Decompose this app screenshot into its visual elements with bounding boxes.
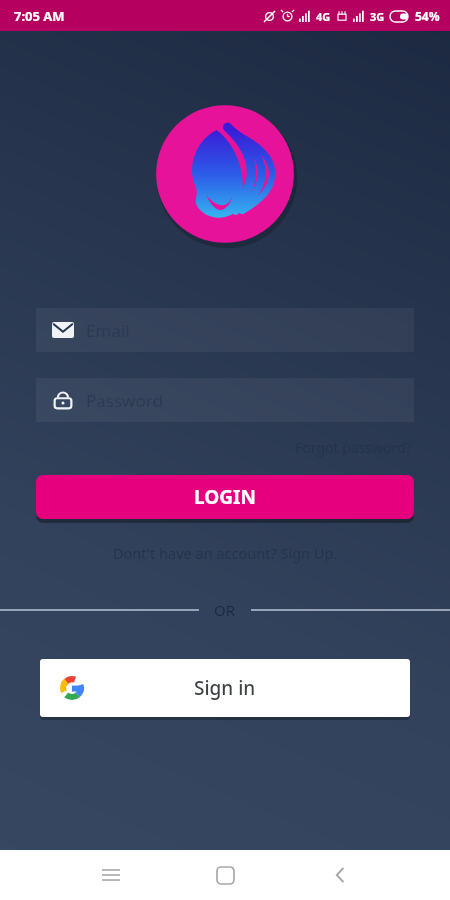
staticText: 54% xyxy=(415,8,440,24)
button[interactable]: Password xyxy=(36,378,414,422)
button[interactable]: LOGIN xyxy=(36,475,414,519)
staticText: Email xyxy=(86,319,130,342)
button[interactable]: Back xyxy=(312,850,368,900)
staticText: Sign in xyxy=(194,675,256,701)
button[interactable]: Sign in xyxy=(40,659,410,717)
staticText: Password xyxy=(86,389,163,412)
staticText: 7:05 AM xyxy=(14,7,65,25)
button[interactable]: Email xyxy=(36,308,414,352)
button[interactable]: Home xyxy=(197,850,253,900)
staticText: OR xyxy=(214,600,236,620)
staticText: LOGIN xyxy=(194,484,256,510)
staticText: Dont't have an account? Sign Up. xyxy=(113,543,338,563)
button[interactable]: Dont't have an account? Sign Up. xyxy=(109,539,342,567)
staticText: 4G xyxy=(316,9,331,24)
button[interactable]: Recents xyxy=(83,850,139,900)
staticText: 3G xyxy=(370,9,385,24)
